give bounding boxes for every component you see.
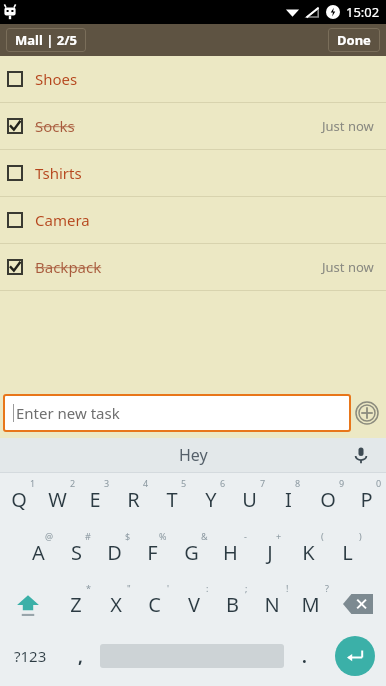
button[interactable]: A: [19, 526, 57, 578]
staticText: *: [86, 582, 91, 594]
button[interactable]: G: [172, 526, 211, 578]
staticText: I: [285, 486, 292, 513]
button[interactable]: ,: [60, 630, 100, 682]
button[interactable]: D: [95, 526, 133, 578]
button[interactable]: P: [347, 473, 386, 526]
staticText: +: [276, 530, 282, 542]
button[interactable]: Z: [56, 578, 96, 630]
staticText: (: [321, 530, 324, 542]
button[interactable]: S: [57, 526, 95, 578]
staticText: 2: [70, 477, 76, 489]
staticText: ;: [245, 582, 248, 594]
staticText: E: [89, 486, 101, 513]
staticText: 7: [260, 477, 266, 489]
button[interactable]: Backpack: [0, 244, 386, 290]
button[interactable]: K: [289, 526, 328, 578]
staticText: 8: [295, 477, 301, 489]
button[interactable]: Mall | 2/5: [6, 28, 86, 52]
button[interactable]: T: [152, 473, 191, 526]
staticText: ,: [78, 645, 83, 668]
staticText: Socks: [35, 116, 75, 136]
staticText: Q: [11, 486, 27, 513]
button[interactable]: Enter new task: [5, 396, 349, 430]
button[interactable]: Backspace: [330, 578, 386, 630]
staticText: X: [110, 591, 122, 618]
staticText: 0: [376, 477, 382, 489]
staticText: %: [159, 530, 167, 542]
button[interactable]: W: [38, 473, 76, 526]
staticText: U: [242, 486, 257, 513]
staticText: .: [302, 645, 307, 668]
button[interactable]: Done: [328, 28, 380, 52]
staticText: N: [264, 591, 280, 618]
button[interactable]: L: [328, 526, 367, 578]
staticText: V: [188, 591, 200, 618]
staticText: :: [206, 582, 209, 594]
staticText: B: [226, 591, 239, 618]
staticText: @: [45, 530, 54, 542]
staticText: P: [360, 486, 373, 513]
staticText: ": [127, 582, 131, 594]
button[interactable]: Hey: [179, 444, 208, 466]
staticText: L: [342, 539, 353, 566]
staticText: S: [71, 539, 82, 566]
staticText: $: [125, 530, 131, 542]
button[interactable]: Voice input: [348, 442, 374, 468]
button[interactable]: M: [291, 578, 330, 630]
staticText: 15:02: [346, 3, 380, 21]
staticText: G: [184, 539, 199, 566]
staticText: !: [286, 582, 289, 594]
button[interactable]: X: [96, 578, 135, 630]
button[interactable]: B: [213, 578, 252, 630]
staticText: ): [359, 530, 362, 542]
staticText: #: [85, 530, 91, 542]
button[interactable]: Y: [191, 473, 230, 526]
staticText: M: [301, 591, 320, 618]
staticText: Mall | 2/5: [15, 31, 77, 49]
staticText: Y: [205, 486, 217, 513]
button[interactable]: Socks: [0, 103, 386, 149]
button[interactable]: I: [269, 473, 308, 526]
staticText: R: [127, 486, 140, 513]
button[interactable]: Q: [0, 473, 38, 526]
staticText: A: [32, 539, 45, 566]
button[interactable]: C: [135, 578, 174, 630]
button[interactable]: V: [174, 578, 213, 630]
staticText: ?123: [14, 646, 47, 666]
staticText: Just now: [322, 117, 374, 135]
button[interactable]: Tshirts: [0, 150, 386, 196]
staticText: F: [147, 539, 158, 566]
button[interactable]: Shoes: [0, 56, 386, 102]
staticText: Tshirts: [35, 163, 82, 183]
button[interactable]: Enter: [324, 630, 386, 682]
staticText: Enter new task: [16, 403, 120, 423]
staticText: W: [48, 486, 67, 513]
staticText: H: [223, 539, 238, 566]
button[interactable]: ?123: [0, 630, 60, 682]
button[interactable]: Camera: [0, 197, 386, 243]
staticText: -: [244, 530, 247, 542]
staticText: 6: [220, 477, 226, 489]
button[interactable]: J: [250, 526, 289, 578]
staticText: K: [302, 539, 315, 566]
button[interactable]: N: [252, 578, 291, 630]
button[interactable]: Shift: [0, 578, 56, 630]
staticText: ': [167, 582, 170, 594]
staticText: Done: [337, 31, 371, 49]
button[interactable]: U: [230, 473, 269, 526]
button[interactable]: R: [114, 473, 152, 526]
staticText: 1: [30, 477, 36, 489]
button[interactable]: F: [133, 526, 172, 578]
button[interactable]: O: [308, 473, 347, 526]
button[interactable]: H: [211, 526, 250, 578]
staticText: Just now: [322, 258, 374, 276]
staticText: 9: [339, 477, 345, 489]
staticText: O: [320, 486, 336, 513]
button[interactable]: .: [284, 630, 324, 682]
button[interactable]: Add task: [351, 393, 383, 433]
staticText: J: [267, 539, 273, 566]
staticText: ?: [325, 582, 329, 594]
button[interactable]: E: [76, 473, 114, 526]
staticText: Backpack: [35, 257, 102, 277]
